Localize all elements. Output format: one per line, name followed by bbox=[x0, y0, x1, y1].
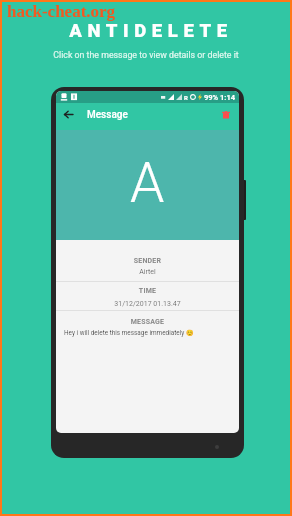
button[interactable]: Back bbox=[59, 105, 77, 123]
staticText: 31/12/2017 01.13.47 bbox=[56, 300, 239, 308]
staticText: ANTIDELETE bbox=[7, 20, 292, 42]
staticText: Hey i will delete this message immediate… bbox=[64, 329, 194, 337]
button[interactable] bbox=[56, 310, 239, 344]
staticText: A bbox=[130, 151, 165, 215]
button[interactable] bbox=[56, 250, 239, 281]
staticText: R bbox=[184, 94, 188, 101]
button[interactable] bbox=[56, 281, 239, 310]
staticText: hack-cheat.org bbox=[7, 2, 116, 21]
staticText: Message bbox=[87, 109, 128, 121]
button[interactable]: Delete bbox=[217, 106, 234, 123]
staticText: TIME bbox=[56, 287, 239, 295]
staticText: 99% 1:14 bbox=[204, 93, 236, 102]
staticText: SENDER bbox=[56, 257, 239, 265]
staticText: Airtel bbox=[56, 268, 239, 276]
staticText: Click on the message to view details or … bbox=[2, 50, 290, 60]
staticText: MESSAGE bbox=[56, 318, 239, 326]
